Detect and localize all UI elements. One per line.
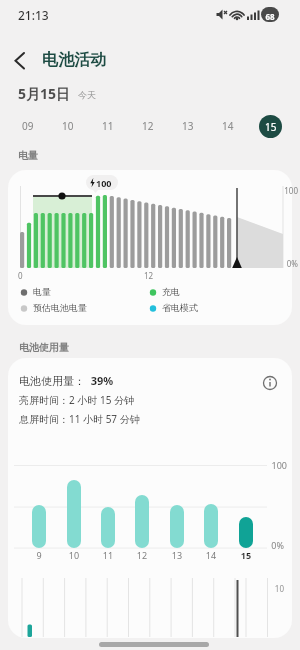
staticText: 电池使用量： 39%: [19, 373, 114, 388]
staticText: 12: [132, 549, 152, 561]
staticText: 电量: [18, 149, 38, 162]
staticText: 0%: [280, 258, 298, 269]
staticText: 21:13: [18, 7, 49, 23]
staticText: 亮屏时间：2 小时 15 分钟: [19, 393, 134, 407]
button[interactable]: 11: [88, 112, 128, 140]
staticText: 5月15日: [18, 84, 71, 103]
staticText: 10: [266, 583, 284, 594]
staticText: 9: [29, 549, 49, 561]
staticText: 省电模式: [162, 302, 198, 313]
button[interactable]: [256, 369, 284, 397]
staticText: 15: [236, 549, 256, 561]
staticText: 15: [265, 120, 277, 134]
staticText: 11: [98, 549, 118, 561]
staticText: 12: [144, 270, 154, 281]
staticText: 电池使用量: [19, 341, 69, 354]
button[interactable]: [6, 46, 40, 76]
button[interactable]: 09: [8, 112, 48, 140]
staticText: 09: [22, 119, 34, 133]
staticText: 13: [167, 549, 187, 561]
button[interactable]: 14: [208, 112, 248, 140]
staticText: 12: [142, 119, 154, 133]
button[interactable]: 12: [128, 112, 168, 140]
staticText: 11: [102, 119, 114, 133]
staticText: 10: [64, 549, 84, 561]
staticText: 100: [269, 459, 287, 471]
button[interactable]: 13: [168, 112, 208, 140]
staticText: 100: [96, 177, 112, 189]
staticText: 100: [280, 185, 298, 196]
staticText: 10: [62, 119, 74, 133]
staticText: 电量: [33, 286, 51, 297]
staticText: 预估电池电量: [33, 302, 87, 313]
staticText: 充电: [162, 286, 180, 297]
staticText: 68: [261, 11, 279, 22]
staticText: 14: [201, 549, 221, 561]
button[interactable]: 15: [248, 112, 292, 140]
staticText: 0: [18, 270, 23, 281]
button[interactable]: 10: [48, 112, 88, 140]
staticText: 电池活动: [42, 50, 106, 70]
staticText: 息屏时间：11 小时 57 分钟: [19, 412, 140, 426]
staticText: 13: [182, 119, 194, 133]
staticText: 0%: [266, 539, 284, 551]
staticText: 今天: [78, 89, 96, 100]
staticText: 14: [222, 119, 234, 133]
